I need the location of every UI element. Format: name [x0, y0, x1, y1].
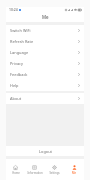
staticText: About: [10, 96, 22, 101]
button[interactable]: Me: [64, 159, 84, 180]
button[interactable]: Settings: [44, 159, 64, 180]
button[interactable]: Help: [6, 80, 84, 91]
button[interactable]: Information: [25, 159, 44, 180]
staticText: Privacy: [10, 61, 23, 66]
staticText: Settings: [49, 171, 60, 175]
staticText: Help: [10, 83, 19, 88]
button[interactable]: Refresh Rate: [6, 36, 84, 47]
staticText: Language: [10, 50, 29, 55]
staticText: Refresh Rate: [10, 39, 34, 44]
staticText: Switch WiFi: [10, 28, 31, 33]
staticText: Me: [42, 14, 49, 20]
button[interactable]: Switch WiFi: [6, 25, 84, 36]
button[interactable]: Feedback: [6, 69, 84, 80]
button[interactable]: About: [6, 93, 84, 104]
staticText: 10:24: [9, 7, 18, 12]
staticText: Feedback: [10, 72, 28, 77]
button[interactable]: Privacy: [6, 58, 84, 69]
button[interactable]: Home: [6, 159, 25, 180]
staticText: Information: [27, 171, 43, 175]
staticText: Me: [72, 171, 76, 175]
button[interactable]: Language: [6, 47, 84, 58]
staticText: Logout: [39, 149, 52, 154]
staticText: Home: [12, 171, 20, 175]
button[interactable]: Logout: [6, 146, 84, 156]
